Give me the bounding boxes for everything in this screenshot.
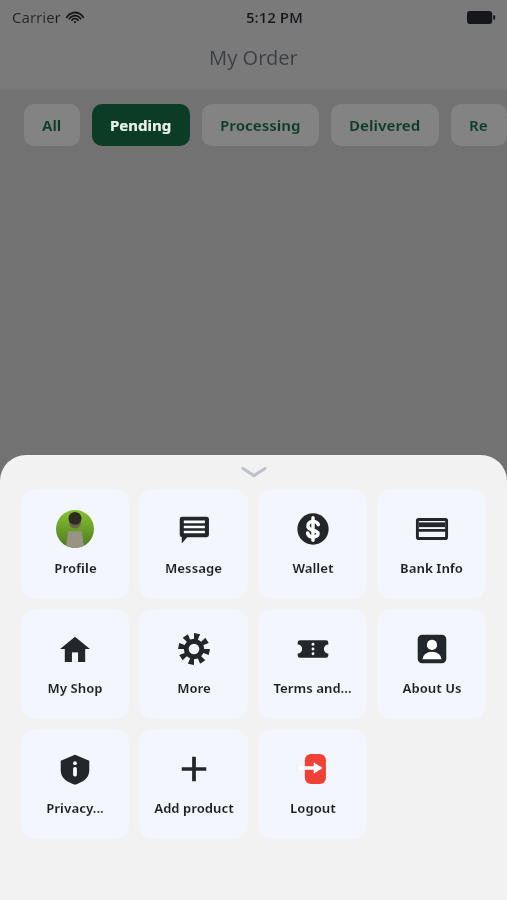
- button[interactable]: Collapse sheet: [0, 455, 507, 489]
- button[interactable]: Bank Info: [377, 489, 486, 599]
- button[interactable]: Pending: [92, 104, 190, 146]
- staticText: Delivered: [349, 115, 421, 135]
- staticText: My Order: [209, 44, 298, 71]
- staticText: Message: [165, 559, 222, 577]
- staticText: Profile: [54, 559, 97, 577]
- button[interactable]: About Us: [377, 609, 486, 719]
- staticText: Carrier: [12, 7, 61, 27]
- button[interactable]: Terms and...: [258, 609, 367, 719]
- button[interactable]: Message: [139, 489, 248, 599]
- button[interactable]: My Shop: [21, 609, 129, 719]
- button[interactable]: All: [24, 104, 80, 146]
- button[interactable]: Add product: [139, 729, 248, 839]
- button[interactable]: Profile: [21, 489, 129, 599]
- staticText: Privacy...: [46, 799, 104, 817]
- button[interactable]: Logout: [258, 729, 367, 839]
- staticText: 5:12 PM: [246, 7, 303, 27]
- button[interactable]: Returned: [451, 104, 507, 146]
- staticText: Returned: [469, 115, 489, 135]
- staticText: Wallet: [292, 559, 334, 577]
- staticText: Add product: [154, 799, 234, 817]
- staticText: All: [42, 115, 62, 135]
- staticText: Processing: [220, 115, 301, 135]
- staticText: More: [177, 679, 211, 697]
- staticText: Terms and...: [273, 679, 352, 697]
- button[interactable]: Wallet: [258, 489, 367, 599]
- staticText: My Shop: [47, 679, 103, 697]
- button[interactable]: Processing: [202, 104, 319, 146]
- button[interactable]: Delivered: [331, 104, 439, 146]
- staticText: Bank Info: [400, 559, 463, 577]
- staticText: Logout: [290, 799, 336, 817]
- staticText: Pending: [110, 115, 172, 135]
- staticText: About Us: [402, 679, 462, 697]
- button[interactable]: Privacy...: [21, 729, 129, 839]
- button[interactable]: More: [139, 609, 248, 719]
